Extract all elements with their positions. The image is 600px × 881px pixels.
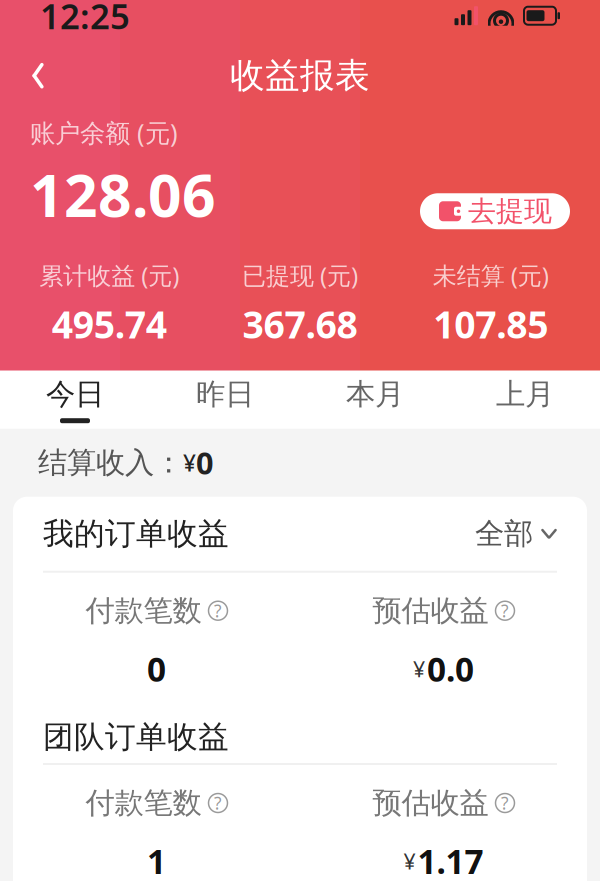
staticText: 128.06 <box>30 155 216 233</box>
staticText: 付款笔数 <box>85 593 201 629</box>
button[interactable]: 全部 <box>475 516 557 552</box>
staticText: 本月 <box>346 376 404 412</box>
staticText: 0.0 <box>427 647 474 691</box>
button[interactable]: 去提现 <box>420 193 570 229</box>
staticText: 12:25 <box>40 0 130 39</box>
button[interactable]: 上月 <box>450 371 600 429</box>
staticText: 今日 <box>46 376 104 412</box>
staticText: 未结算 (元) <box>433 259 549 291</box>
staticText: ¥ <box>183 448 196 478</box>
staticText: 0 <box>147 647 166 691</box>
button[interactable]: 本月 <box>300 371 450 429</box>
staticText: 全部 <box>475 516 533 552</box>
staticText: 上月 <box>496 376 554 412</box>
staticText: 107.85 <box>433 299 548 349</box>
staticText: ? <box>501 599 509 622</box>
staticText: 1.17 <box>417 839 483 881</box>
staticText: 367.68 <box>242 299 357 349</box>
staticText: 预估收益 <box>372 593 488 629</box>
staticText: 1 <box>147 839 166 881</box>
staticText: 付款笔数 <box>85 785 201 821</box>
staticText: 收益报表 <box>230 54 370 97</box>
staticText: ? <box>214 791 222 814</box>
staticText: 昨日 <box>196 376 254 412</box>
staticText: 团队订单收益 <box>43 718 229 756</box>
staticText: 累计收益 (元) <box>39 259 179 291</box>
staticText: 已提现 (元) <box>242 259 358 291</box>
staticText: 我的订单收益 <box>43 515 229 553</box>
button[interactable]: 今日 <box>0 371 150 429</box>
staticText: 去提现 <box>468 194 552 228</box>
staticText: ¥ <box>403 847 415 875</box>
staticText: 结算收入： <box>38 445 183 481</box>
staticText: ¥ <box>413 655 425 683</box>
button[interactable]: 昨日 <box>150 371 300 429</box>
staticText: 预估收益 <box>372 785 488 821</box>
staticText: ? <box>501 791 509 814</box>
button[interactable]: Back <box>14 52 62 100</box>
staticText: 账户余额 (元) <box>30 116 178 149</box>
staticText: 0 <box>196 442 214 483</box>
staticText: 495.74 <box>52 299 167 349</box>
staticText: ? <box>214 599 222 622</box>
